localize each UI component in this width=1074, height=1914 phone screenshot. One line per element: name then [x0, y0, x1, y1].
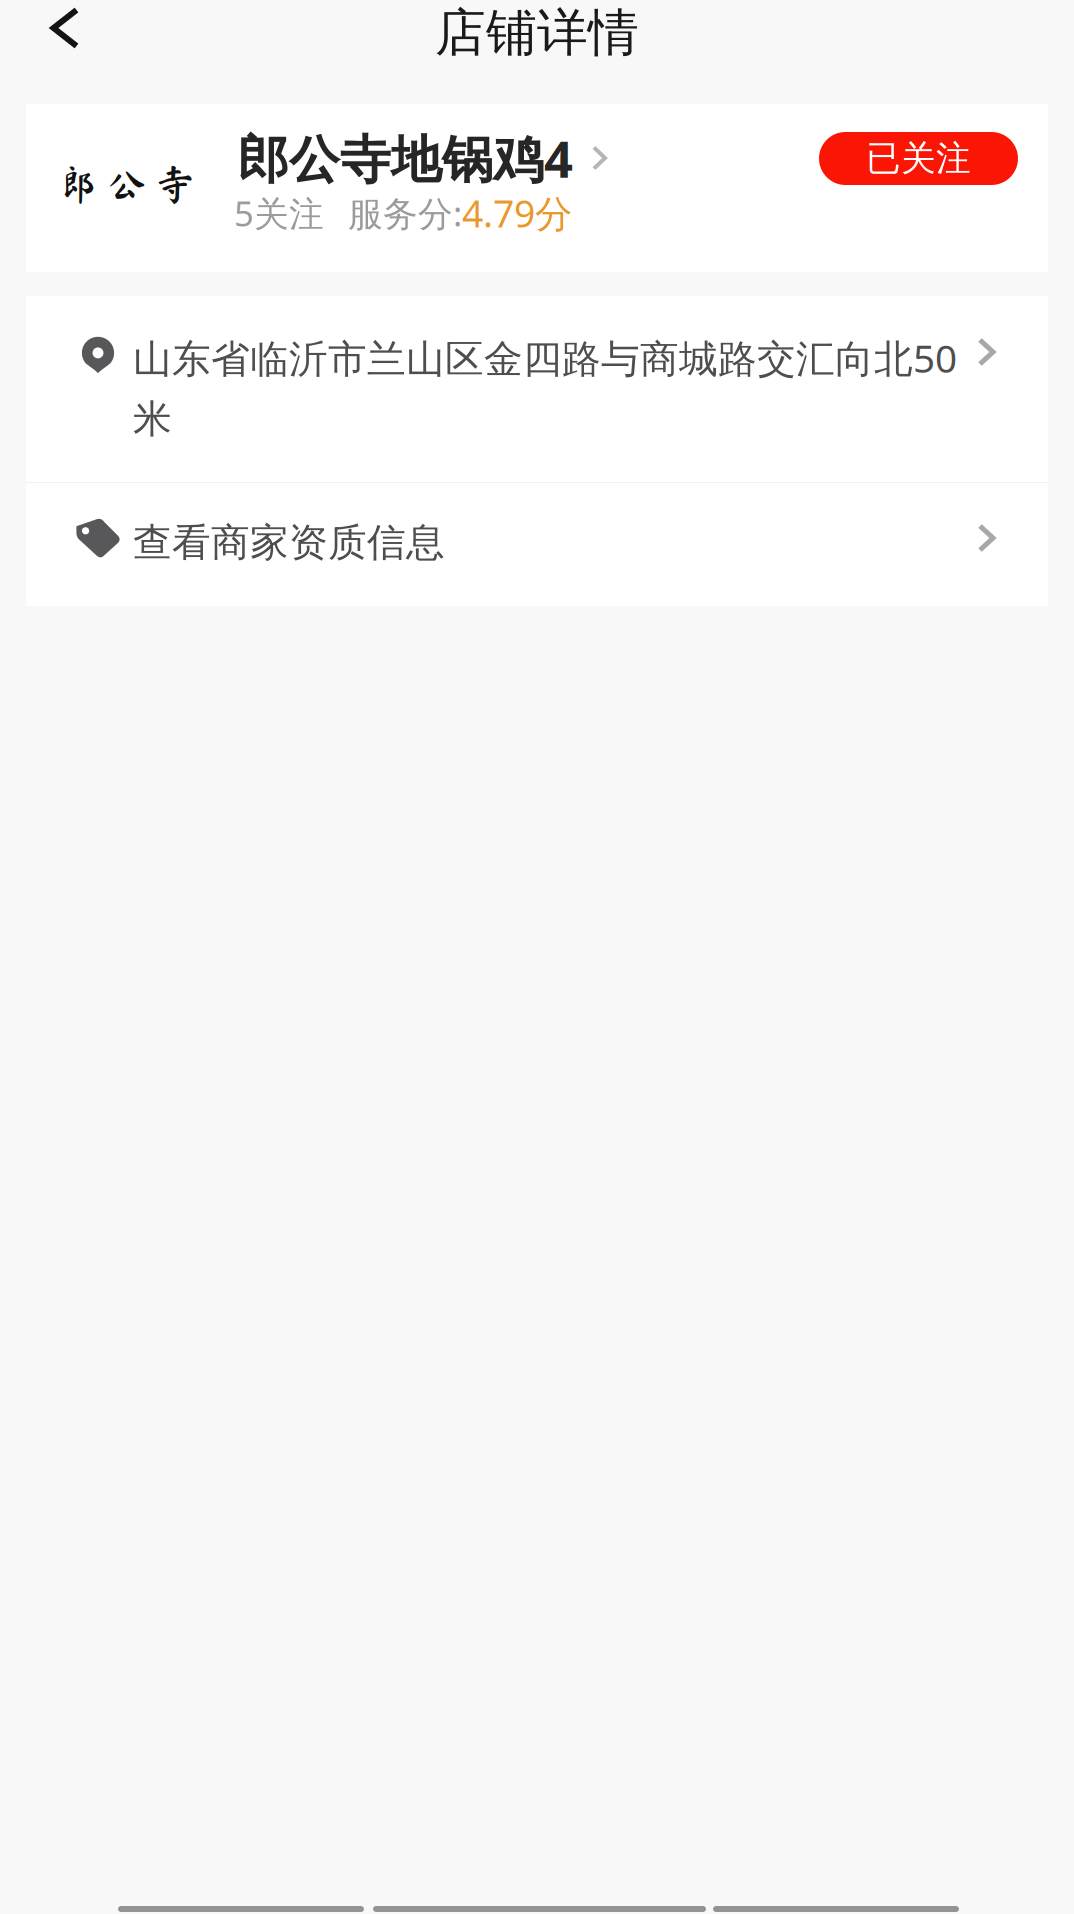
- staticText: 已关注: [866, 137, 971, 180]
- staticText: 查看商家资质信息: [133, 519, 445, 566]
- staticText: 5关注: [234, 190, 324, 236]
- staticText: 4.79分: [462, 188, 572, 238]
- button[interactable]: 已关注: [819, 132, 1018, 185]
- staticText: 郎 公 寺: [59, 164, 195, 204]
- button[interactable]: 返回: [0, 1, 130, 55]
- staticText: 服务分:: [348, 190, 462, 236]
- staticText: 店铺详情: [435, 2, 639, 64]
- button[interactable]: 查看商家资质信息: [26, 483, 1048, 606]
- staticText: 郎公寺地锅鸡4: [238, 124, 573, 192]
- button[interactable]: 山东省临沂市兰山区金四路与商城路交汇向北50米: [26, 296, 1048, 482]
- button[interactable]: 郎公寺地锅鸡4: [238, 130, 608, 186]
- staticText: 山东省临沂市兰山区金四路与商城路交汇向北50米: [133, 332, 957, 443]
